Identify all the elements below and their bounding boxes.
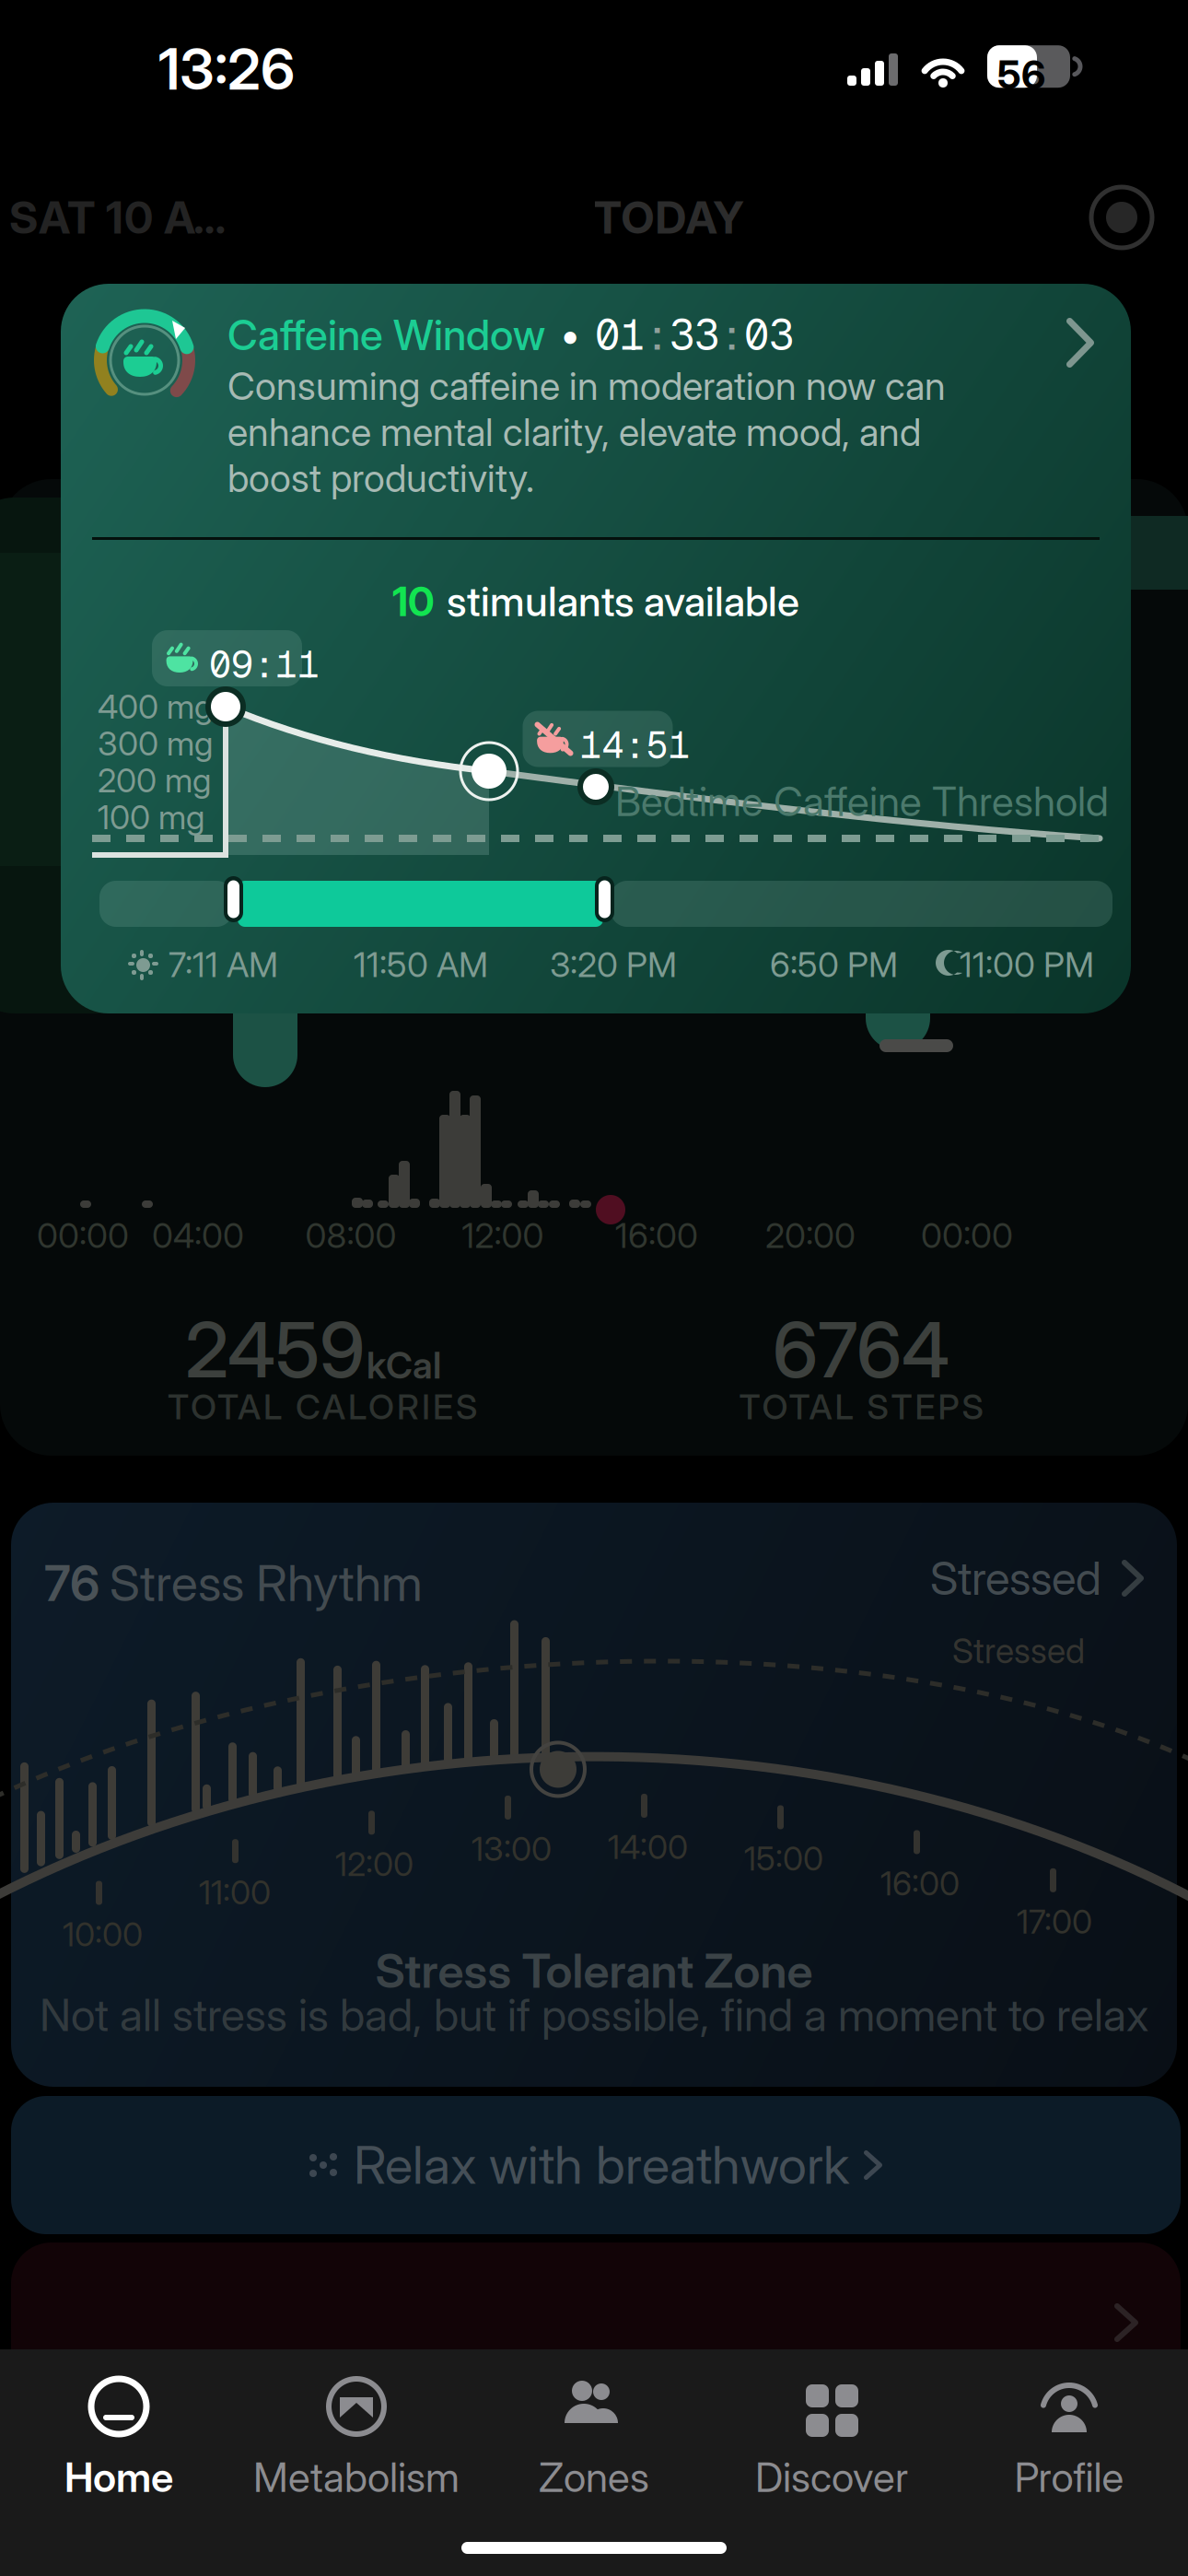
staticText: 00:00 bbox=[37, 1215, 129, 1256]
staticText: Dynamic Recovery bbox=[376, 2351, 815, 2417]
button[interactable]: Caffeine Window bbox=[61, 284, 1131, 1013]
staticText: Zones bbox=[539, 2453, 649, 2502]
staticText: stimulants available bbox=[447, 577, 799, 626]
button[interactable]: SAT 10 AUG bbox=[9, 191, 249, 244]
staticText: 3:20 PM bbox=[550, 944, 677, 985]
staticText: 56 bbox=[997, 51, 1045, 98]
button[interactable]: Home bbox=[0, 2375, 238, 2502]
staticText: 17:00 bbox=[1017, 1902, 1092, 1942]
staticText: Stress Rhythm bbox=[110, 1553, 423, 1613]
button[interactable]: Relax with breathwork bbox=[11, 2096, 1181, 2234]
staticText: Stressed bbox=[930, 1551, 1101, 1606]
staticText: SAT 10 AUG bbox=[9, 191, 248, 244]
staticText: 76 bbox=[44, 1553, 99, 1613]
staticText: Discover bbox=[755, 2453, 908, 2502]
staticText: Not all stress is bad, but if possible, … bbox=[40, 1988, 1148, 2042]
staticText: : bbox=[719, 308, 744, 362]
staticText: 200 mg bbox=[98, 760, 211, 800]
staticText: 6764 bbox=[773, 1304, 949, 1396]
staticText: 03 bbox=[744, 308, 794, 362]
staticText: 6:50 PM bbox=[770, 944, 898, 985]
staticText: 13:00 bbox=[472, 1829, 552, 1869]
staticText: TOTAL STEPS bbox=[739, 1386, 983, 1428]
staticText: 10 bbox=[392, 577, 435, 626]
staticText: 2459 bbox=[185, 1304, 365, 1396]
staticText: 16:00 bbox=[880, 1863, 960, 1903]
staticText: • bbox=[545, 311, 595, 359]
staticText: 11:00 bbox=[199, 1872, 271, 1912]
staticText: 01 bbox=[595, 308, 645, 362]
staticText: Profile bbox=[1014, 2453, 1124, 2502]
staticText: Metabolism bbox=[253, 2453, 460, 2502]
staticText: 100 mg bbox=[98, 797, 204, 837]
staticText: 14:51 bbox=[580, 721, 690, 769]
staticText: 33 bbox=[670, 308, 719, 362]
staticText: 20:00 bbox=[765, 1215, 856, 1256]
staticText: 11:00 PM bbox=[960, 944, 1094, 985]
staticText: 00:00 bbox=[921, 1215, 1013, 1256]
staticText: 15:00 bbox=[744, 1838, 823, 1879]
staticText: kCal bbox=[367, 1343, 441, 1388]
staticText: 12:00 bbox=[335, 1844, 413, 1884]
button[interactable]: Profile bbox=[950, 2375, 1188, 2502]
staticText: Relax with breathwork bbox=[354, 2134, 849, 2196]
button[interactable]: Rings bbox=[1089, 184, 1155, 251]
staticText: 7:11 AM bbox=[169, 944, 278, 985]
staticText: 400 mg bbox=[98, 687, 213, 727]
staticText: Home bbox=[64, 2453, 173, 2502]
staticText: Bedtime Caffeine Threshold bbox=[615, 777, 1109, 826]
staticText: Stressed bbox=[952, 1630, 1085, 1671]
staticText: Stress Tolerant Zone bbox=[375, 1942, 813, 1999]
staticText: 13:26 bbox=[158, 35, 295, 103]
staticText: 10:00 bbox=[63, 1914, 143, 1954]
staticText: TOTAL CALORIES bbox=[168, 1386, 477, 1428]
button[interactable]: Metabolism bbox=[238, 2375, 475, 2502]
button[interactable]: Zones bbox=[475, 2375, 713, 2502]
button[interactable]: TODAY bbox=[586, 191, 751, 244]
staticText: 14:00 bbox=[608, 1827, 688, 1867]
button[interactable]: 10:00 bbox=[11, 1503, 1177, 2087]
staticText: Consuming caffeine in moderation now can… bbox=[227, 363, 946, 501]
button[interactable]: Discover bbox=[713, 2375, 950, 2502]
staticText: TODAY bbox=[594, 191, 744, 244]
staticText: : bbox=[645, 308, 670, 362]
staticText: 16:00 bbox=[615, 1215, 698, 1256]
staticText: 04:00 bbox=[152, 1215, 244, 1256]
staticText: 12:00 bbox=[462, 1215, 544, 1256]
staticText: Caffeine Window bbox=[227, 310, 545, 360]
staticText: 300 mg bbox=[98, 723, 213, 764]
staticText: 09:11 bbox=[209, 640, 320, 688]
staticText: 08:00 bbox=[305, 1215, 396, 1256]
staticText: 11:50 AM bbox=[354, 944, 488, 985]
